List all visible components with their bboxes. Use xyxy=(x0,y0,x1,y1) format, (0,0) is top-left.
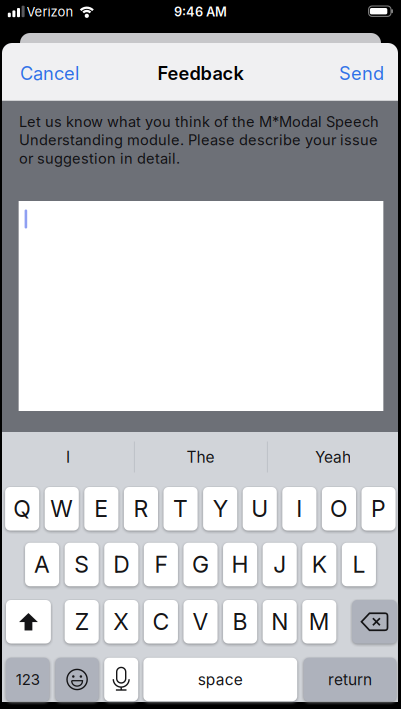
button[interactable]: M xyxy=(302,600,336,643)
staticText: Let us know what you think of the M*Moda… xyxy=(19,113,379,130)
staticText: S xyxy=(74,551,89,578)
staticText: U xyxy=(251,495,268,522)
button[interactable]: G xyxy=(183,543,217,586)
staticText: Send xyxy=(339,63,384,84)
button[interactable]: K xyxy=(302,543,336,586)
staticText: K xyxy=(312,551,327,578)
staticText: G xyxy=(192,551,209,578)
staticText: Z xyxy=(75,608,89,635)
button[interactable]: P xyxy=(361,487,396,530)
button[interactable]: F xyxy=(144,543,178,586)
staticText: Yeah xyxy=(315,448,351,466)
staticText: N xyxy=(271,608,288,635)
staticText: W xyxy=(50,495,73,522)
button[interactable]: C xyxy=(144,600,178,643)
button[interactable]: U xyxy=(243,487,277,530)
staticText: A xyxy=(34,551,50,578)
staticText: L xyxy=(352,551,365,578)
button[interactable]: The xyxy=(145,437,255,477)
button[interactable]: Delete xyxy=(352,600,397,643)
button[interactable]: T xyxy=(163,487,198,530)
button[interactable]: Emoji xyxy=(55,658,99,701)
button[interactable]: Dictate xyxy=(104,658,138,701)
button[interactable]: Send xyxy=(339,63,384,84)
staticText: R xyxy=(133,495,148,522)
staticText: Verizon xyxy=(26,4,73,20)
button[interactable]: Shift xyxy=(6,600,51,643)
staticText: B xyxy=(233,608,248,635)
staticText: O xyxy=(330,495,348,522)
staticText: Y xyxy=(213,495,228,522)
button[interactable]: Yeah xyxy=(278,437,388,477)
staticText: J xyxy=(273,551,286,578)
staticText: C xyxy=(152,608,169,635)
button[interactable]: space xyxy=(143,658,297,701)
staticText: M xyxy=(309,608,330,635)
button[interactable]: L xyxy=(342,543,376,586)
staticText: I xyxy=(296,495,302,522)
staticText: return xyxy=(328,670,372,689)
button[interactable]: J xyxy=(263,543,297,586)
staticText: D xyxy=(113,551,129,578)
staticText: The xyxy=(186,448,214,466)
button[interactable]: X xyxy=(104,600,138,643)
button[interactable]: R xyxy=(124,487,158,530)
button[interactable]: I xyxy=(282,487,316,530)
staticText: F xyxy=(154,551,167,578)
button[interactable]: return xyxy=(304,658,396,701)
button[interactable]: E xyxy=(84,487,118,530)
staticText: Feedback xyxy=(157,63,243,84)
button[interactable]: Cancel xyxy=(20,63,79,84)
button[interactable]: O xyxy=(322,487,356,530)
staticText: X xyxy=(113,608,129,635)
staticText: Cancel xyxy=(20,63,79,84)
button[interactable]: Numbers xyxy=(6,658,49,701)
button[interactable]: A xyxy=(25,543,59,586)
staticText: V xyxy=(192,608,208,635)
button[interactable]: S xyxy=(65,543,99,586)
button[interactable]: Q xyxy=(5,487,39,530)
button[interactable]: H xyxy=(223,543,257,586)
staticText: 9:46 AM xyxy=(174,4,227,19)
staticText: 123 xyxy=(16,671,40,688)
staticText: P xyxy=(371,495,386,522)
staticText: Q xyxy=(13,495,31,522)
button[interactable]: V xyxy=(183,600,218,643)
button[interactable]: I xyxy=(13,437,123,477)
staticText: or suggestion in detail. xyxy=(19,150,180,167)
staticText: E xyxy=(94,495,108,522)
staticText: space xyxy=(198,670,243,689)
staticText: H xyxy=(232,551,249,578)
staticText: I xyxy=(66,448,70,466)
button[interactable]: Z xyxy=(65,600,99,643)
button[interactable]: W xyxy=(45,487,79,530)
button[interactable]: N xyxy=(263,600,297,643)
button[interactable]: B xyxy=(223,600,257,643)
button[interactable]: D xyxy=(104,543,138,586)
staticText: T xyxy=(173,495,188,522)
button[interactable]: Y xyxy=(203,487,237,530)
staticText: Understanding module. Please describe yo… xyxy=(19,131,378,149)
